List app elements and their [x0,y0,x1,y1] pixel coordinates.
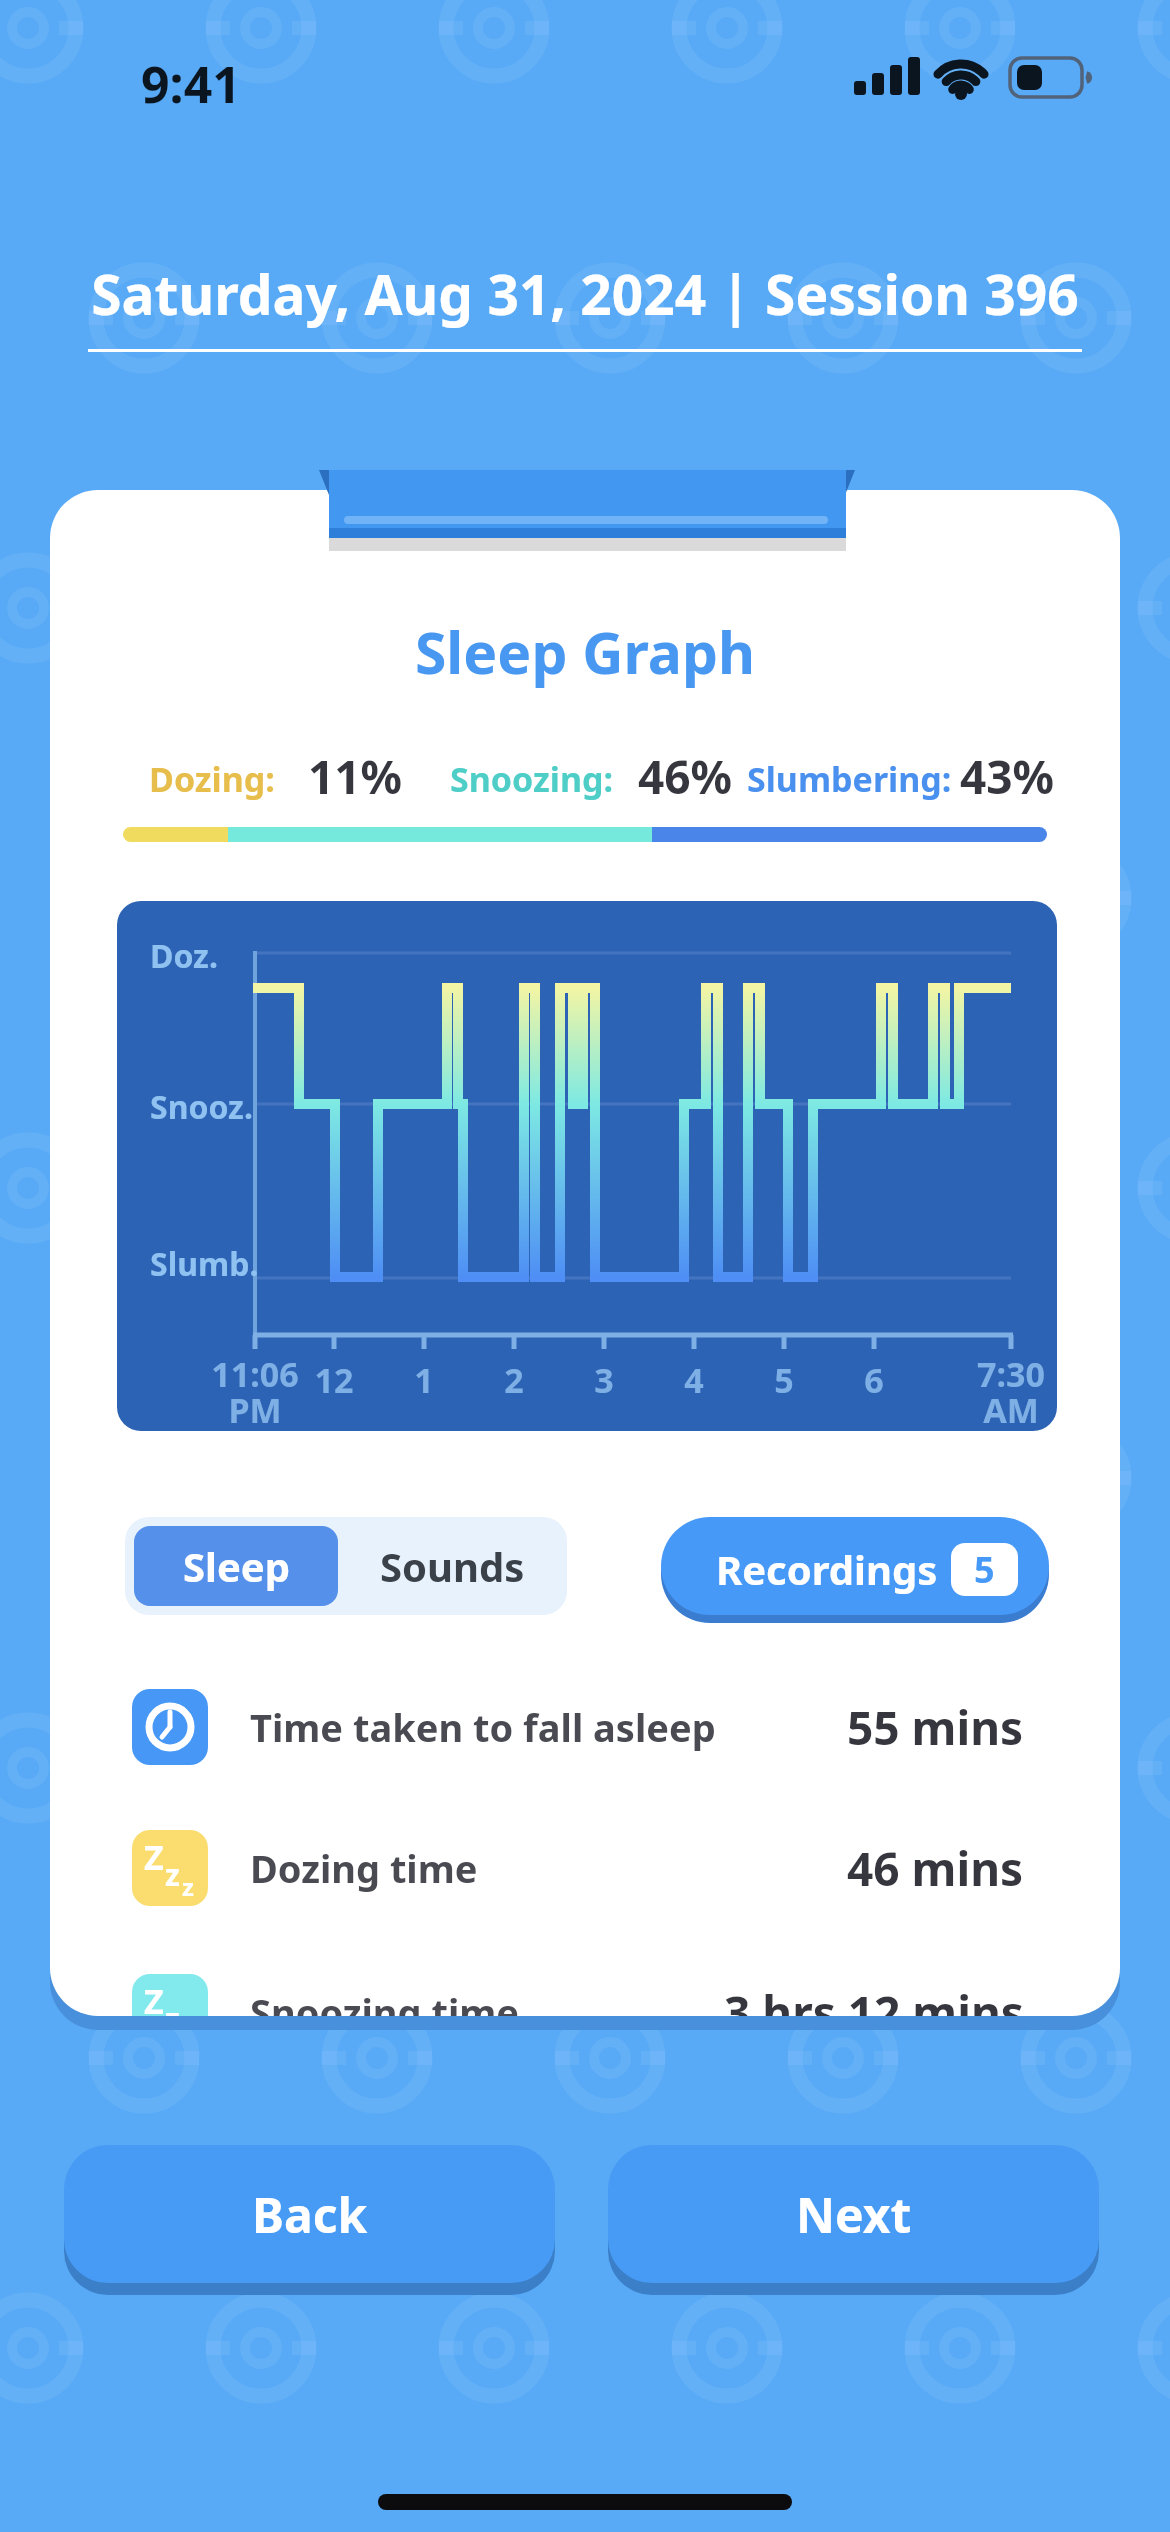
staticText: 1 [374,1357,474,1403]
staticText: Snoozing time [250,1986,520,2016]
button[interactable]: Recordings [661,1517,1049,1615]
staticText: Back [252,2182,368,2247]
staticText: Sleep [183,1539,290,1593]
staticText: Slumbering: [747,756,952,802]
staticText: Dozing time [250,1842,478,1894]
staticText: 11% [308,745,403,808]
staticText: z [165,1998,180,2016]
staticText: 7:30 AM [961,1351,1061,1433]
staticText: 46 mins [847,1837,1024,1900]
button[interactable]: Z [110,1810,1070,1926]
staticText: Sleep Graph [50,613,1120,691]
button[interactable]: Sleep [134,1526,338,1606]
staticText: Dozing: [149,756,275,802]
staticText: Snooz. [150,1085,253,1129]
staticText: 2 [464,1357,564,1403]
staticText: Saturday, Aug 31, 2024 | Session 396 [0,256,1170,331]
staticText: 3 hrs 12 mins [724,1981,1024,2016]
staticText: Snoozing: [450,756,614,802]
staticText: 5 [974,1545,995,1594]
button[interactable]: Next [608,2145,1099,2283]
staticText: 46% [638,745,733,808]
staticText: 55 mins [847,1696,1024,1759]
staticText: z [182,1870,194,1903]
staticText: 4 [644,1357,744,1403]
staticText: 6 [824,1357,924,1403]
staticText: 3 [554,1357,654,1403]
staticText: Z [144,1834,164,1880]
button[interactable]: Back [64,2145,555,2283]
staticText: 9:41 [141,50,241,118]
staticText: Sounds [380,1539,525,1593]
button[interactable]: Sounds [347,1526,558,1606]
button[interactable]: Z [110,1954,1070,2016]
staticText: Doz. [150,934,218,978]
staticText: Slumb. [150,1242,259,1286]
staticText: 11:06 PM [205,1351,305,1433]
staticText: 5 [734,1357,834,1403]
staticText: 12 [284,1357,384,1403]
staticText: 43% [960,745,1055,808]
staticText: Z [144,1978,164,2016]
button[interactable]: Time taken to fall asleep [110,1669,1070,1785]
staticText: Recordings [716,1542,938,1596]
staticText: z [165,1854,180,1895]
staticText: Next [796,2182,912,2247]
staticText: Time taken to fall asleep [250,1701,716,1753]
